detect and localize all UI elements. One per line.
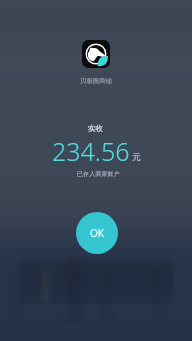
staticText: 贝极圈商铺 bbox=[80, 77, 112, 85]
staticText: 234.56 bbox=[52, 134, 130, 168]
staticText: 已存入商家账户 bbox=[77, 170, 120, 178]
staticText: OK bbox=[90, 226, 104, 240]
staticText: 实收 bbox=[88, 124, 104, 134]
staticText: 元 bbox=[132, 152, 141, 163]
button[interactable]: OK bbox=[76, 212, 118, 254]
